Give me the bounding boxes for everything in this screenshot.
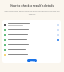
button[interactable] [2,37,61,42]
button[interactable] [2,47,61,52]
staticText: How to check a result's details [10,4,54,8]
button[interactable] [2,42,61,47]
button[interactable] [2,27,61,32]
staticText: Got it [30,60,35,62]
staticText: Get more info about sources and the resu… [3,10,61,16]
button[interactable] [2,32,61,37]
button[interactable] [2,22,61,27]
button[interactable] [2,52,61,57]
button[interactable]: Got it [27,59,37,62]
